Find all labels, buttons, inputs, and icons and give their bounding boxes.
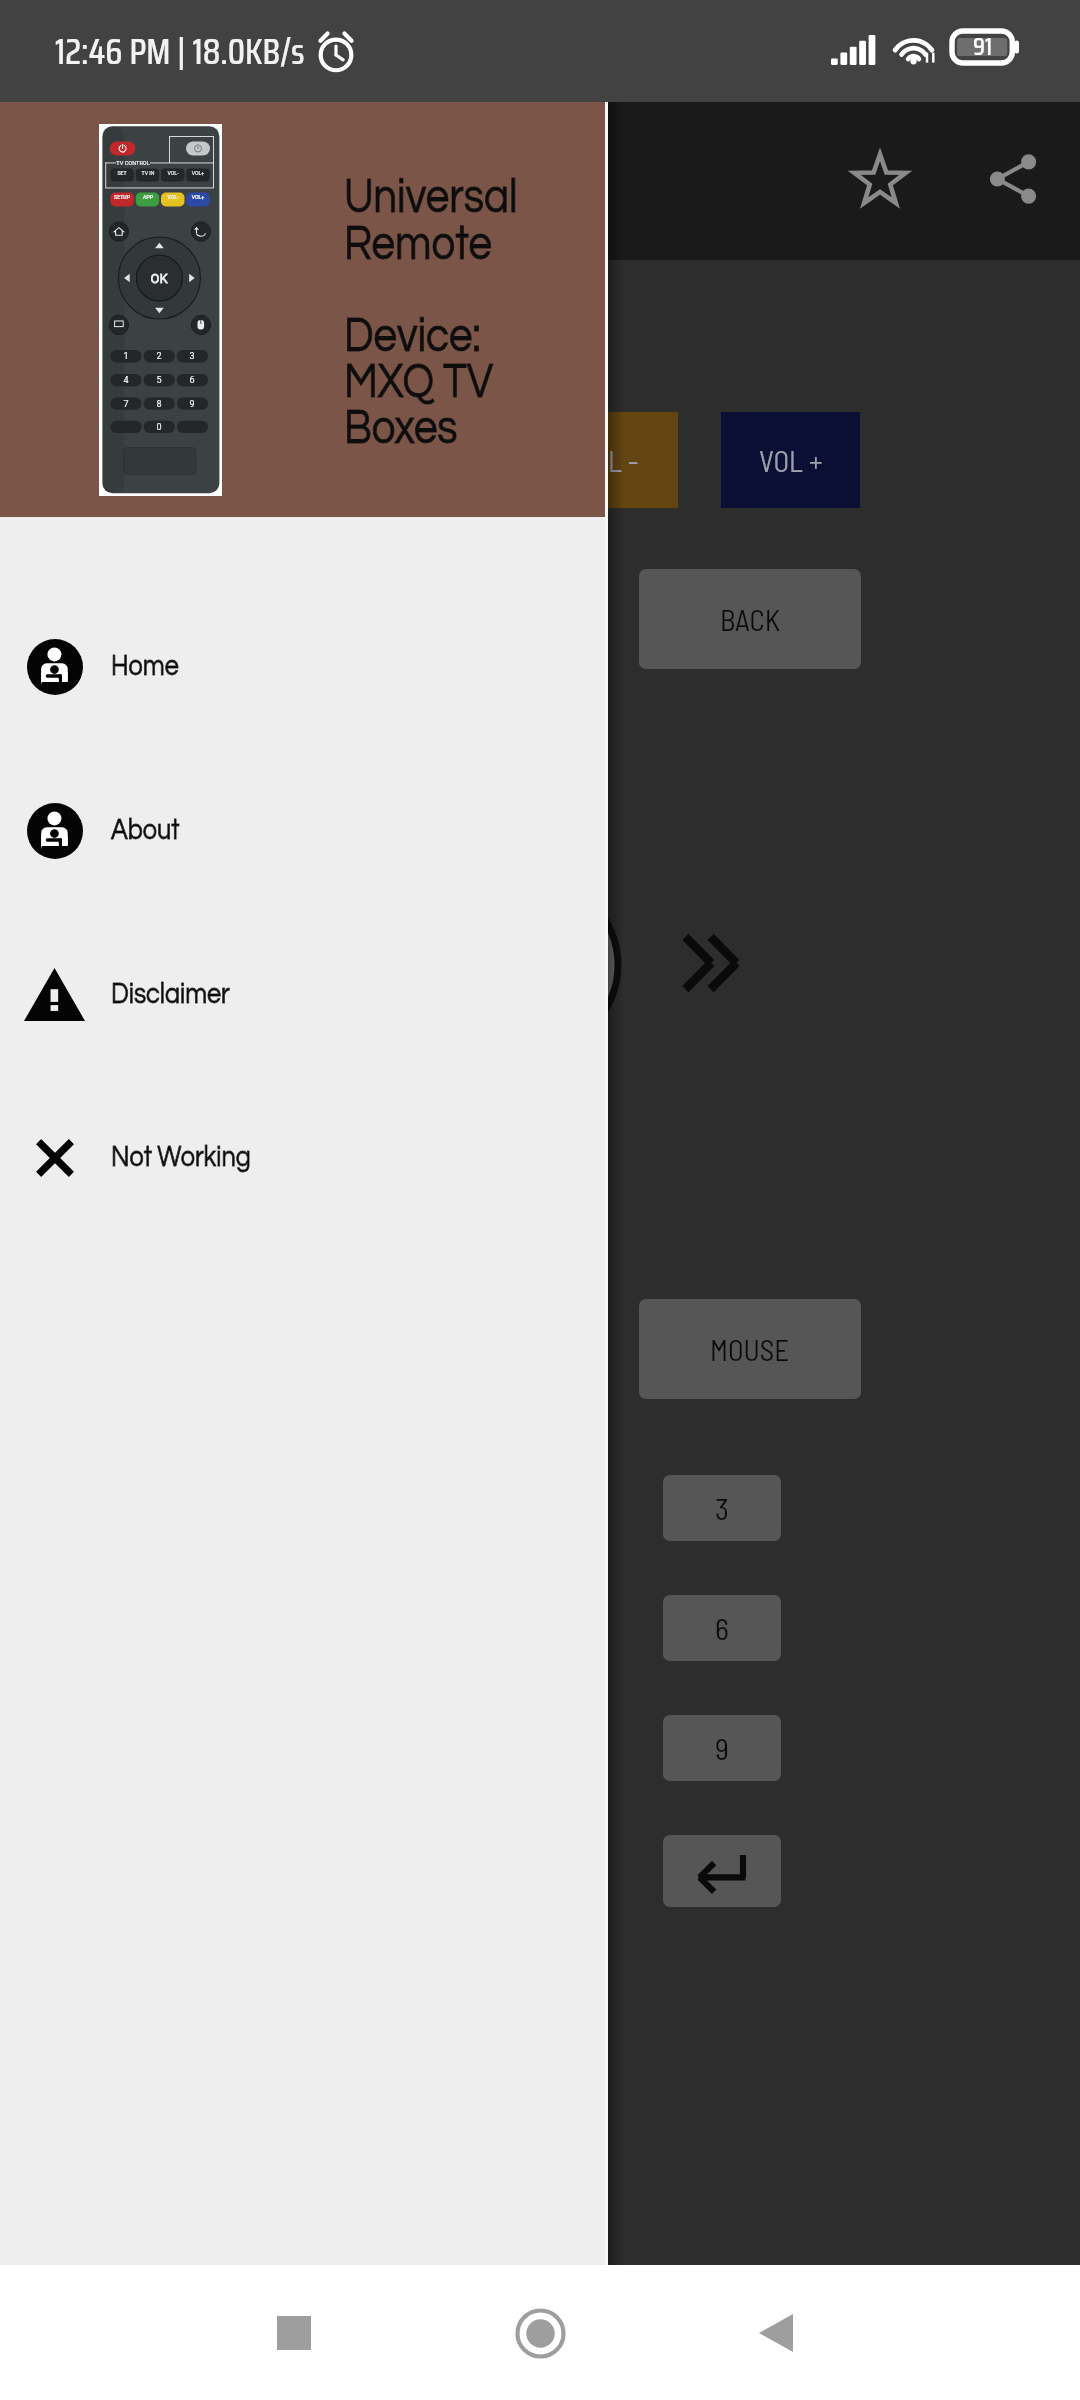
staticText: Not Working [111,1142,251,1172]
staticText: 5 [141,375,177,386]
staticText: 1 [108,351,144,362]
staticText: 9 [715,1730,729,1766]
staticText: SET [104,170,140,176]
staticText: 3 [174,351,210,362]
button[interactable]: 6 [663,1595,781,1661]
staticText: 12:46 PM | 18.0KB/s [55,23,305,80]
staticText: 0 [141,422,177,433]
button[interactable]: Recent apps [226,2266,362,2400]
button[interactable]: Fast forward [660,910,766,1016]
button[interactable]: Enter [663,1835,781,1907]
staticText: VOL- [155,170,191,176]
staticText: 6 [715,1610,729,1646]
staticText: 3 [715,1490,729,1526]
staticText: VOL+ [180,194,216,200]
button[interactable]: BACK [639,569,861,669]
staticText: Home [111,651,179,681]
staticText: About [111,815,180,845]
staticText: VOL - [578,443,639,478]
staticText: MOUSE [710,1332,790,1367]
button[interactable]: MOUSE [639,1299,861,1399]
button[interactable]: VOL - [539,412,678,508]
button[interactable]: Home [472,2266,608,2400]
button[interactable]: Share [977,143,1049,215]
staticText: 9 [174,399,210,410]
button[interactable]: Back [708,2266,844,2400]
staticText: Universal Remote Device: MXQ TV Boxes [344,173,518,453]
staticText: APP [130,194,166,200]
staticText: Disclaimer [111,979,230,1009]
staticText: 91 [973,27,992,66]
button[interactable]: Disclaimer [0,912,608,1076]
staticText: 4 [108,375,144,386]
staticText: VOL+ [180,170,216,176]
staticText: OK [141,271,177,286]
staticText: VOL- [155,194,191,200]
staticText: About [111,815,180,845]
staticText: TV CONTROL [115,160,151,167]
staticText: 8 [141,399,177,410]
staticText: VOL + [759,443,823,478]
button[interactable]: 3 [663,1475,781,1541]
button[interactable]: 9 [663,1715,781,1781]
staticText: BACK [720,602,781,637]
button[interactable]: Favorite [844,143,916,215]
staticText: Not Working [111,1142,251,1172]
staticText: Universal Remote Device: MXQ TV Boxes [344,173,518,453]
staticText: SETUP [104,194,140,200]
staticText: 6 [174,375,210,386]
staticText: Home [111,651,179,681]
staticText: 2 [141,351,177,362]
button[interactable]: Home [0,584,608,748]
button[interactable]: Not Working [0,1075,608,1239]
button[interactable]: About [0,748,608,912]
staticText: Disclaimer [111,979,230,1009]
staticText: TV IN [130,170,166,176]
staticText: 7 [108,399,144,410]
button[interactable]: VOL + [721,412,860,508]
